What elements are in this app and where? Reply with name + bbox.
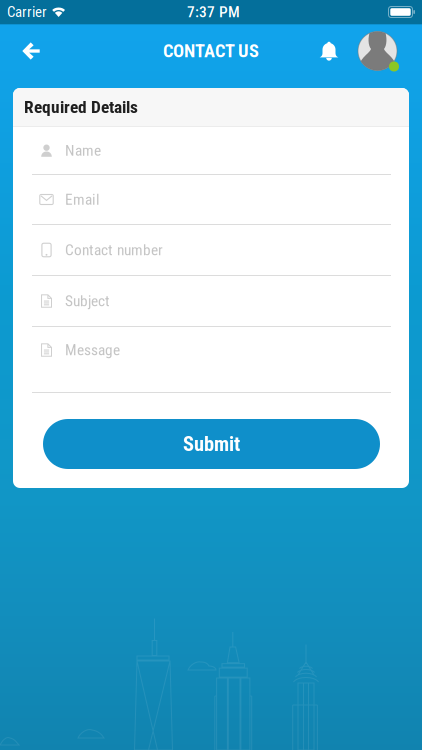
staticText: Message bbox=[65, 341, 120, 359]
staticText: Submit bbox=[183, 432, 240, 456]
button[interactable]: Profile bbox=[358, 24, 397, 78]
staticText: Required Details bbox=[24, 97, 138, 117]
staticText: Carrier bbox=[7, 3, 47, 21]
button[interactable]: Notifications bbox=[311, 24, 347, 78]
staticText: Subject bbox=[65, 292, 110, 310]
staticText: Name bbox=[65, 141, 101, 159]
staticText: Email bbox=[65, 190, 100, 208]
staticText: CONTACT US bbox=[163, 40, 259, 62]
staticText: 7:37 PM bbox=[187, 3, 240, 21]
button[interactable]: Submit bbox=[32, 419, 391, 469]
staticText: Contact number bbox=[65, 241, 163, 259]
button[interactable]: Back bbox=[10, 24, 52, 78]
